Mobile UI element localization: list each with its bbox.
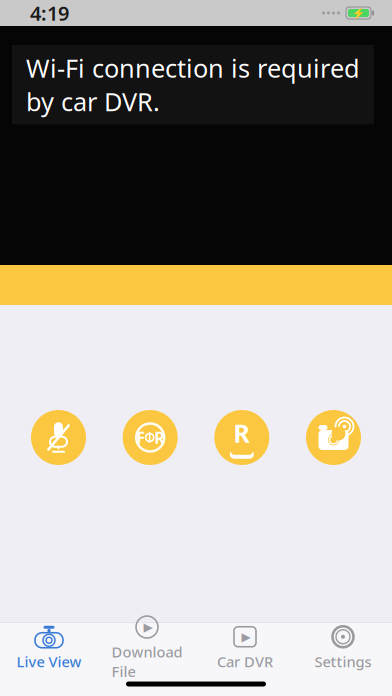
staticText: Car DVR <box>217 652 273 671</box>
staticText: Wi-Fi connection is required by car DVR. <box>26 51 360 118</box>
button[interactable]: Switch front or rear camera <box>123 410 178 465</box>
staticText: ▶ <box>143 620 152 634</box>
staticText: Live View <box>16 652 81 671</box>
staticText: 4:19 <box>30 0 69 26</box>
button[interactable]: Settings <box>294 620 392 675</box>
staticText: F <box>136 427 145 448</box>
button[interactable]: Capture snapshot <box>306 410 361 465</box>
button[interactable]: Rear camera recording <box>214 410 269 465</box>
staticText: ⚡ <box>352 7 365 19</box>
staticText: Settings <box>314 652 371 671</box>
staticText: ▶ <box>241 630 250 644</box>
staticText: Download File <box>111 642 182 681</box>
button[interactable]: Mute microphone <box>31 410 86 465</box>
staticText: R <box>233 416 250 450</box>
staticText: R <box>154 427 164 448</box>
button[interactable]: ▶ <box>196 620 294 675</box>
button[interactable]: ▶ <box>98 610 196 685</box>
button[interactable]: Live View <box>0 620 98 675</box>
